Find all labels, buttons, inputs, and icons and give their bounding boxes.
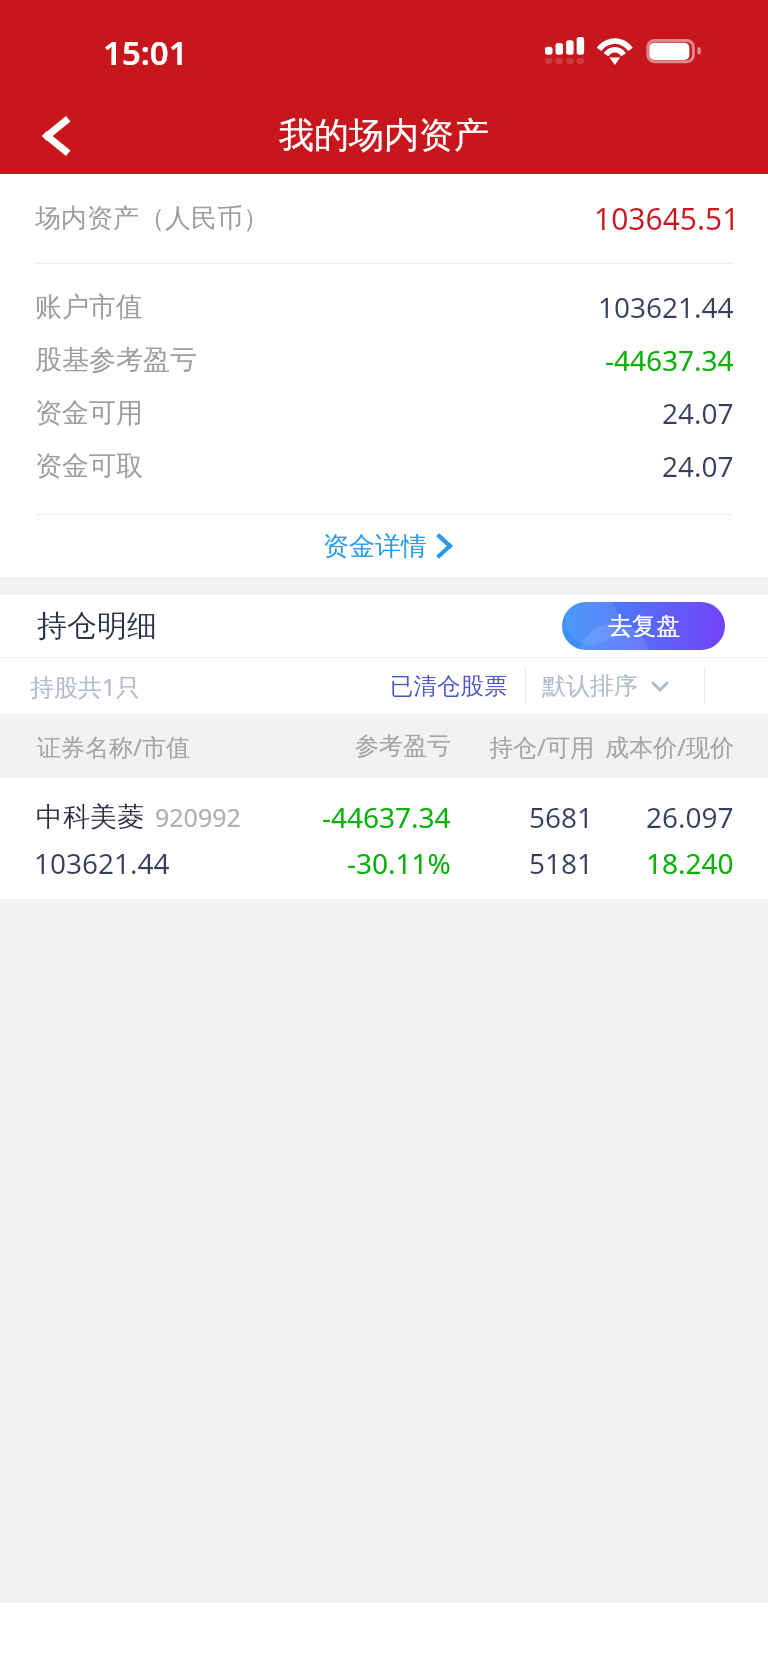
staticText: 920992 <box>155 800 241 834</box>
staticText: 资金可用 <box>35 396 143 430</box>
staticText: -44637.34 <box>322 798 451 836</box>
staticText: 5181 <box>529 844 594 882</box>
staticText: -44637.34 <box>605 341 734 379</box>
staticText: 103621.44 <box>34 844 170 882</box>
staticText: -30.11% <box>347 844 451 882</box>
staticText: 资金可取 <box>35 449 143 483</box>
staticText: 26.097 <box>646 798 734 836</box>
staticText: 15:01 <box>103 30 188 75</box>
staticText: 已清仓股票 <box>390 671 508 701</box>
staticText: 中科美菱 <box>36 800 144 834</box>
staticText: 证券名称/市值 <box>37 730 190 763</box>
staticText: 场内资产（人民币） <box>35 202 269 235</box>
staticText: 持仓明细 <box>37 607 157 645</box>
staticText: 24.07 <box>662 447 734 485</box>
staticText: 参考盈亏 <box>355 731 451 761</box>
staticText: 持仓/可用 <box>489 730 594 763</box>
staticText: 账户市值 <box>35 290 143 324</box>
staticText: 资金详情 <box>323 530 427 563</box>
staticText: 103645.51 <box>594 198 740 239</box>
staticText: 我的场内资产 <box>279 113 489 157</box>
staticText: 股基参考盈亏 <box>35 343 197 377</box>
staticText: 5681 <box>529 798 594 836</box>
staticText: 默认排序 <box>542 671 638 701</box>
button[interactable]: 默认排序 <box>526 658 689 714</box>
staticText: 103621.44 <box>598 288 734 326</box>
button[interactable]: 已清仓股票 <box>374 658 524 714</box>
staticText: 去复盘 <box>608 611 680 641</box>
staticText: 成本价/现价 <box>605 730 734 763</box>
button[interactable]: 资金详情 <box>0 515 768 577</box>
button[interactable]: 去复盘 <box>562 602 725 650</box>
button[interactable]: Back <box>14 92 102 180</box>
staticText: 24.07 <box>662 394 734 432</box>
button[interactable]: 中科美菱 <box>0 778 768 899</box>
staticText: 持股共1只 <box>30 670 140 703</box>
staticText: 18.240 <box>646 844 734 882</box>
